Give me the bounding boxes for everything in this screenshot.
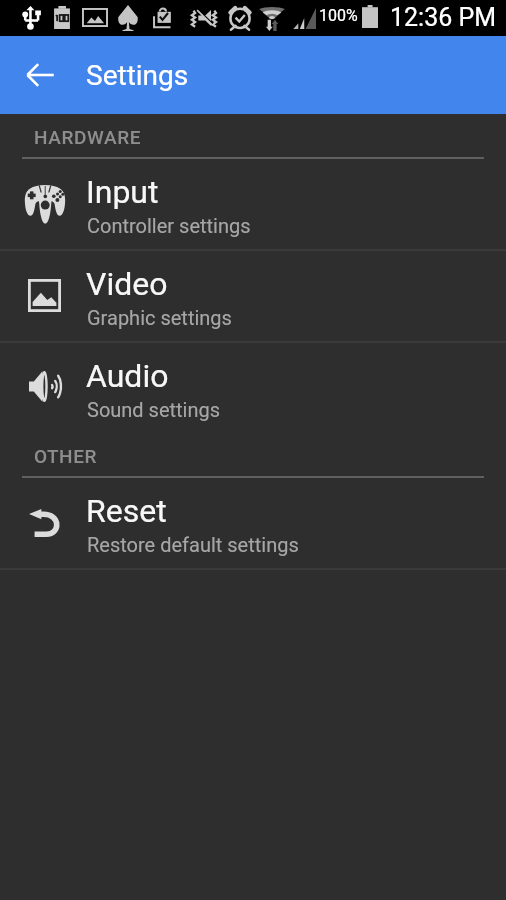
staticText: Restore default settings [87, 533, 299, 556]
button[interactable]: Input [0, 159, 506, 249]
staticText: Reset [86, 492, 167, 530]
staticText: 12:36 PM [390, 3, 497, 32]
staticText: HARDWARE [34, 126, 141, 148]
other: Battery full [362, 5, 378, 28]
other: Silent mode [189, 8, 218, 28]
staticText: Graphic settings [87, 306, 232, 329]
staticText: Audio [86, 357, 169, 395]
staticText: Controller settings [87, 214, 251, 237]
staticText: OTHER [34, 445, 97, 467]
staticText: Video [86, 265, 168, 303]
button[interactable]: Audio [0, 343, 506, 433]
other: Tasks [153, 7, 172, 30]
staticText: Sound settings [87, 398, 221, 421]
button[interactable]: Reset [0, 478, 506, 568]
other: USB connected [20, 5, 39, 30]
staticText: Input [86, 173, 159, 211]
other: Battery saver [53, 6, 71, 29]
button[interactable]: Video [0, 251, 506, 341]
staticText: 100% [319, 6, 358, 25]
other: Alarm set [228, 5, 252, 30]
button[interactable]: Navigate up [13, 48, 67, 102]
other: App notification [118, 5, 138, 31]
other: Wi-Fi [258, 3, 286, 31]
other: Mobile signal [289, 7, 316, 29]
other: Screenshot [82, 8, 108, 27]
staticText: Settings [86, 59, 189, 92]
